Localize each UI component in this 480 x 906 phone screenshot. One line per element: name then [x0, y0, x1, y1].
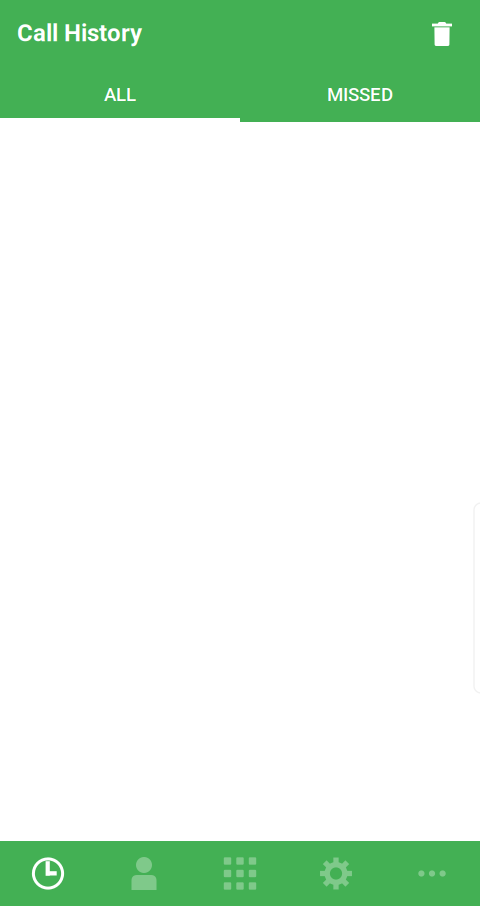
staticText: ALL: [104, 84, 136, 105]
button[interactable]: ALL: [0, 66, 240, 122]
button[interactable]: Keypad: [192, 841, 288, 906]
staticText: Call History: [17, 19, 142, 47]
button[interactable]: Recents: [0, 841, 96, 906]
button[interactable]: Delete call history: [414, 0, 470, 66]
button[interactable]: Contacts: [96, 841, 192, 906]
button[interactable]: Settings: [288, 841, 384, 906]
staticText: MISSED: [327, 84, 393, 105]
button[interactable]: More options: [384, 841, 480, 906]
button[interactable]: MISSED: [240, 66, 480, 122]
